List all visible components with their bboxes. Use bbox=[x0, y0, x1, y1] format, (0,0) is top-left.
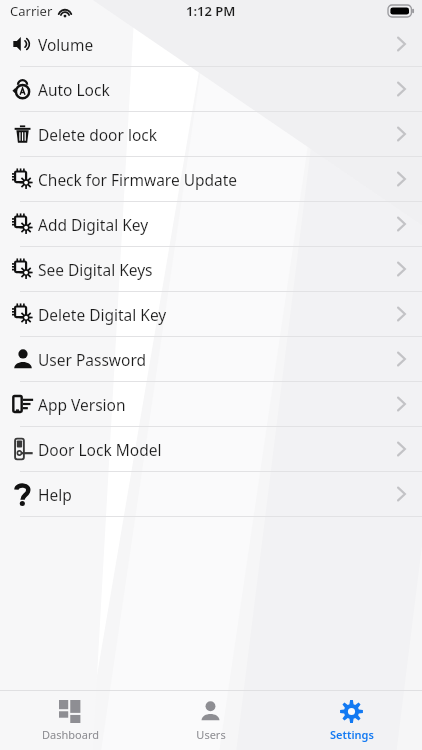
staticText: Help bbox=[38, 484, 72, 505]
staticText: Delete Digital Key bbox=[38, 304, 167, 325]
button[interactable]: Add Digital Key bbox=[0, 202, 422, 246]
button[interactable]: App Version bbox=[0, 382, 422, 426]
staticText: Add Digital Key bbox=[38, 214, 149, 235]
staticText: Auto Lock bbox=[38, 79, 110, 100]
staticText: Volume bbox=[38, 34, 94, 55]
button[interactable]: Door Lock Model bbox=[0, 427, 422, 471]
button[interactable]: Help bbox=[0, 472, 422, 516]
button[interactable]: Dashboard bbox=[0, 691, 140, 750]
staticText: Settings bbox=[330, 727, 374, 742]
button[interactable]: See Digital Keys bbox=[0, 247, 422, 291]
staticText: Carrier bbox=[10, 2, 53, 20]
staticText: 1:12 PM bbox=[186, 2, 236, 20]
staticText: Dashboard bbox=[42, 727, 99, 742]
staticText: See Digital Keys bbox=[38, 259, 153, 280]
button[interactable]: Auto Lock bbox=[0, 67, 422, 111]
staticText: App Version bbox=[38, 394, 126, 415]
staticText: User Password bbox=[38, 349, 147, 370]
button[interactable]: Delete door lock bbox=[0, 112, 422, 156]
staticText: Check for Firmware Update bbox=[38, 169, 238, 190]
staticText: Delete door lock bbox=[38, 124, 157, 145]
button[interactable]: Check for Firmware Update bbox=[0, 157, 422, 201]
button[interactable]: Users bbox=[140, 691, 281, 750]
button[interactable]: Delete Digital Key bbox=[0, 292, 422, 336]
button[interactable]: User Password bbox=[0, 337, 422, 381]
button[interactable]: Volume bbox=[0, 22, 422, 66]
staticText: Users bbox=[196, 727, 226, 742]
staticText: Door Lock Model bbox=[38, 439, 162, 460]
button[interactable]: Settings bbox=[281, 691, 422, 750]
